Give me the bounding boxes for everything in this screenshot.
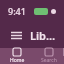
staticText: Search: [41, 57, 57, 64]
button[interactable]: Home: [0, 48, 34, 64]
button[interactable]: Search: [34, 48, 64, 64]
staticText: 9:41: [8, 5, 26, 17]
staticText: Library: [30, 28, 57, 43]
button[interactable]: Menu: [7, 26, 25, 44]
staticText: Home: [10, 57, 25, 64]
